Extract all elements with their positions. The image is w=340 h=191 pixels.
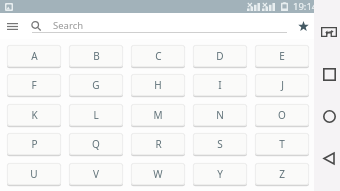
button[interactable]: M	[131, 104, 185, 126]
staticText: D	[216, 49, 224, 63]
button[interactable]: Q	[69, 133, 123, 155]
button[interactable]: Back	[318, 146, 340, 170]
staticText: I	[218, 78, 222, 92]
button[interactable]: S	[193, 133, 247, 155]
button[interactable]: W	[131, 163, 185, 185]
button[interactable]: I	[193, 74, 247, 96]
button[interactable]: N	[193, 104, 247, 126]
staticText: W	[153, 167, 163, 181]
button[interactable]: Home	[318, 104, 340, 128]
staticText: S	[217, 137, 223, 151]
button[interactable]: D	[193, 45, 247, 67]
staticText: Q	[92, 137, 100, 151]
staticText: F	[31, 78, 37, 92]
staticText: M	[153, 108, 163, 122]
button[interactable]: H	[131, 74, 185, 96]
button[interactable]: B	[69, 45, 123, 67]
button[interactable]: K	[7, 104, 61, 126]
staticText: V	[93, 167, 99, 181]
button[interactable]: C	[131, 45, 185, 67]
staticText: 19:14	[293, 0, 318, 13]
staticText: A	[31, 49, 38, 63]
button[interactable]: Rotate screen	[318, 20, 340, 44]
staticText: O	[278, 108, 286, 122]
staticText: H	[154, 78, 162, 92]
staticText: G	[92, 78, 100, 92]
button[interactable]: Search	[47, 13, 287, 39]
button[interactable]: Bookmarks	[292, 13, 314, 39]
button[interactable]: F	[7, 74, 61, 96]
staticText: N	[216, 108, 224, 122]
button[interactable]: G	[69, 74, 123, 96]
staticText: E	[279, 49, 285, 63]
button[interactable]: L	[69, 104, 123, 126]
staticText: R	[155, 137, 162, 151]
staticText: Y	[217, 167, 223, 181]
staticText: K	[31, 108, 38, 122]
button[interactable]: Recents	[318, 62, 340, 86]
button[interactable]: E	[255, 45, 309, 67]
button[interactable]: V	[69, 163, 123, 185]
staticText: P	[31, 137, 38, 151]
button[interactable]: O	[255, 104, 309, 126]
staticText: J	[281, 78, 284, 92]
button[interactable]: J	[255, 74, 309, 96]
button[interactable]: Menu	[0, 13, 25, 39]
staticText: U	[30, 167, 38, 181]
button[interactable]: P	[7, 133, 61, 155]
button[interactable]: U	[7, 163, 61, 185]
staticText: Z	[279, 167, 285, 181]
button[interactable]: A	[7, 45, 61, 67]
button[interactable]: Z	[255, 163, 309, 185]
button[interactable]: T	[255, 133, 309, 155]
button[interactable]: R	[131, 133, 185, 155]
button[interactable]: Y	[193, 163, 247, 185]
staticText: L	[93, 108, 99, 122]
staticText: C	[155, 49, 162, 63]
staticText: Search	[53, 19, 84, 32]
staticText: T	[279, 137, 285, 151]
staticText: B	[93, 49, 100, 63]
